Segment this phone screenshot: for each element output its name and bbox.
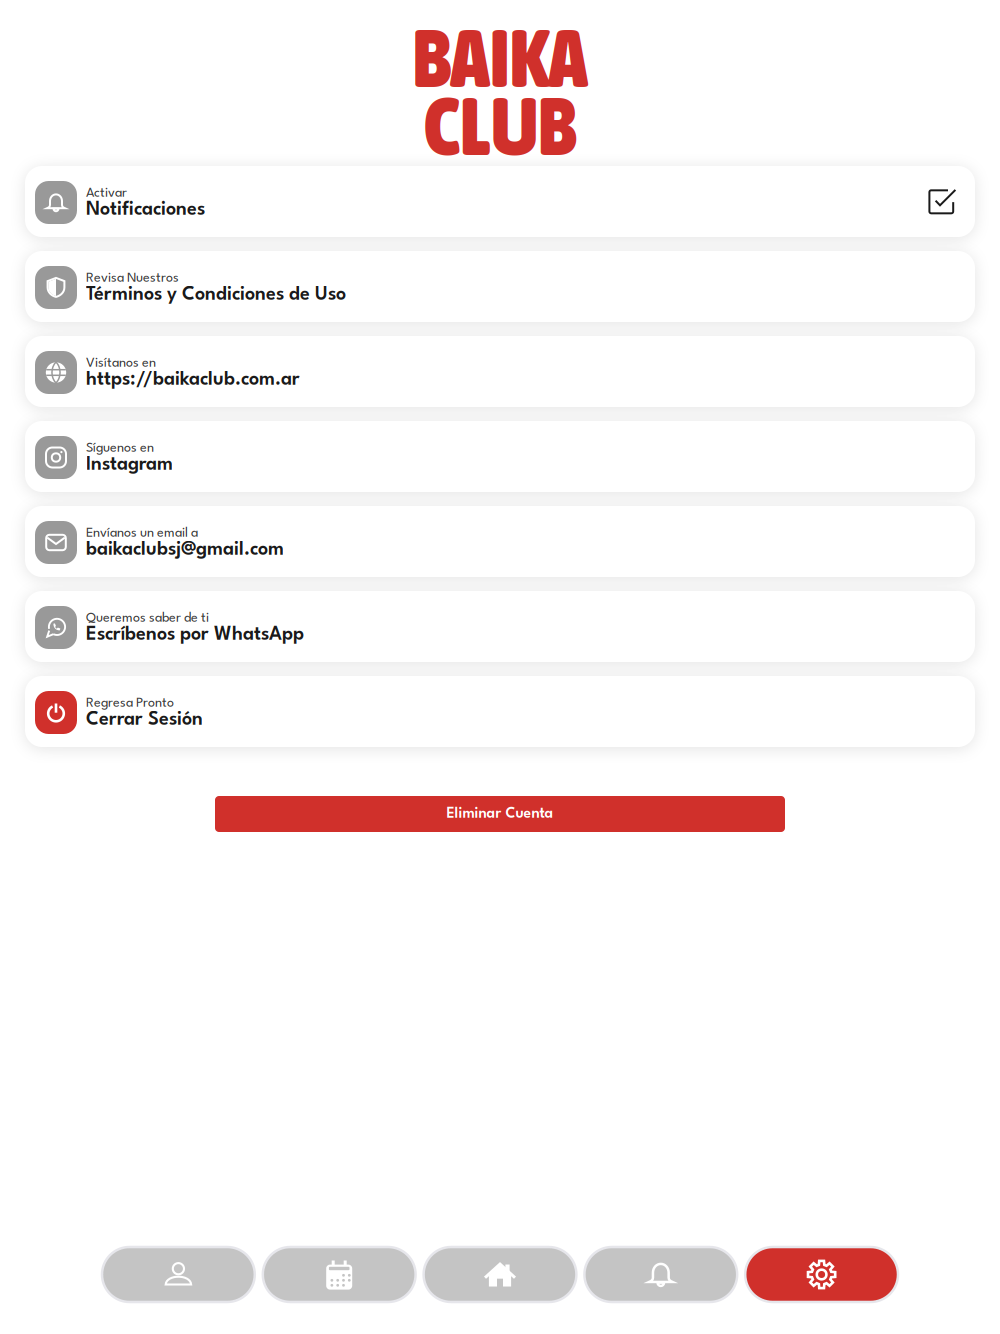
button[interactable]: Perfil [102, 1247, 255, 1302]
staticText: Activar [86, 187, 127, 200]
staticText: Cerrar Sesión [86, 711, 203, 729]
button[interactable]: Regresa Pronto [25, 676, 975, 747]
button[interactable]: Calendario [263, 1247, 416, 1302]
button[interactable]: Síguenos en [25, 421, 975, 492]
staticText: Queremos saber de ti [86, 612, 209, 625]
button[interactable]: Envíanos un email a [25, 506, 975, 577]
staticText: Síguenos en [86, 442, 154, 455]
staticText: CLUB [424, 80, 576, 172]
button[interactable]: Inicio [424, 1247, 576, 1302]
staticText: BAIKA [412, 12, 587, 104]
staticText: Instagram [86, 456, 173, 474]
staticText: Eliminar Cuenta [446, 807, 553, 821]
button[interactable]: Eliminar Cuenta [215, 796, 785, 832]
button[interactable]: Revisa Nuestros [25, 251, 975, 322]
button[interactable]: Ajustes [745, 1247, 898, 1302]
staticText: https://baikaclub.com.ar [86, 371, 300, 389]
button[interactable]: Visítanos en [25, 336, 975, 407]
button[interactable]: Queremos saber de ti [25, 591, 975, 662]
staticText: baikaclubsj@gmail.com [86, 541, 284, 559]
staticText: Escríbenos por WhatsApp [86, 626, 304, 644]
button[interactable]: Activar [25, 166, 975, 237]
staticText: Revisa Nuestros [86, 272, 179, 285]
staticText: Envíanos un email a [86, 527, 198, 540]
staticText: Visítanos en [86, 357, 156, 370]
button[interactable]: Notificaciones [584, 1247, 737, 1302]
staticText: Notificaciones [86, 201, 205, 219]
staticText: Regresa Pronto [86, 697, 174, 710]
staticText: Términos y Condiciones de Uso [86, 286, 346, 304]
